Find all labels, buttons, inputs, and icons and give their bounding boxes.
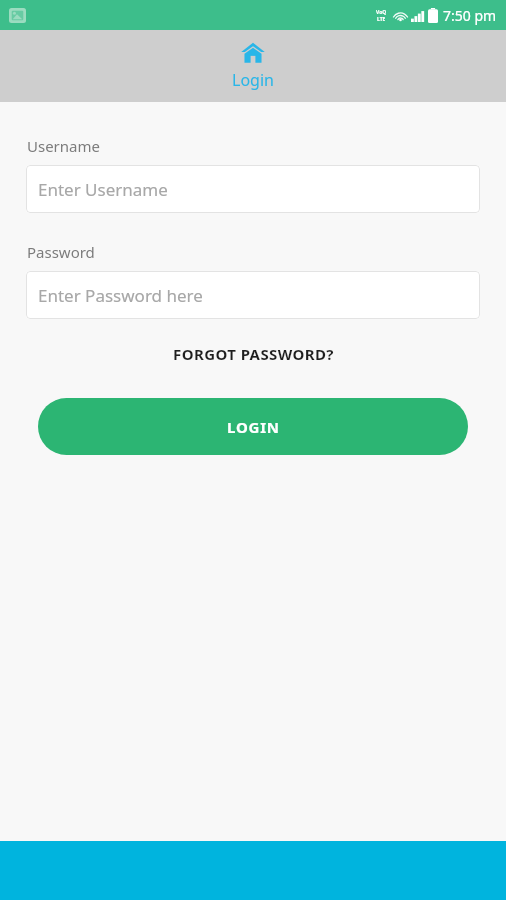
button[interactable]: Login tab	[0, 30, 506, 102]
staticText: LOGIN	[227, 417, 280, 437]
button[interactable]: LOGIN	[38, 398, 468, 455]
staticText: Login	[232, 69, 274, 91]
staticText: LTE	[377, 16, 386, 23]
button[interactable]: FORGOT PASSWORD?	[167, 342, 340, 366]
other: Login tab	[232, 42, 274, 91]
staticText: FORGOT PASSWORD?	[173, 344, 334, 364]
button[interactable]: Enter Username	[26, 165, 480, 213]
staticText: VoQ	[376, 9, 387, 16]
staticText: 7:50 pm	[443, 6, 497, 25]
staticText: Password	[27, 242, 95, 262]
staticText: Enter Username	[38, 178, 168, 201]
button[interactable]: Enter Password here	[26, 271, 480, 319]
staticText: Enter Password here	[38, 284, 203, 307]
staticText: Username	[27, 136, 100, 156]
